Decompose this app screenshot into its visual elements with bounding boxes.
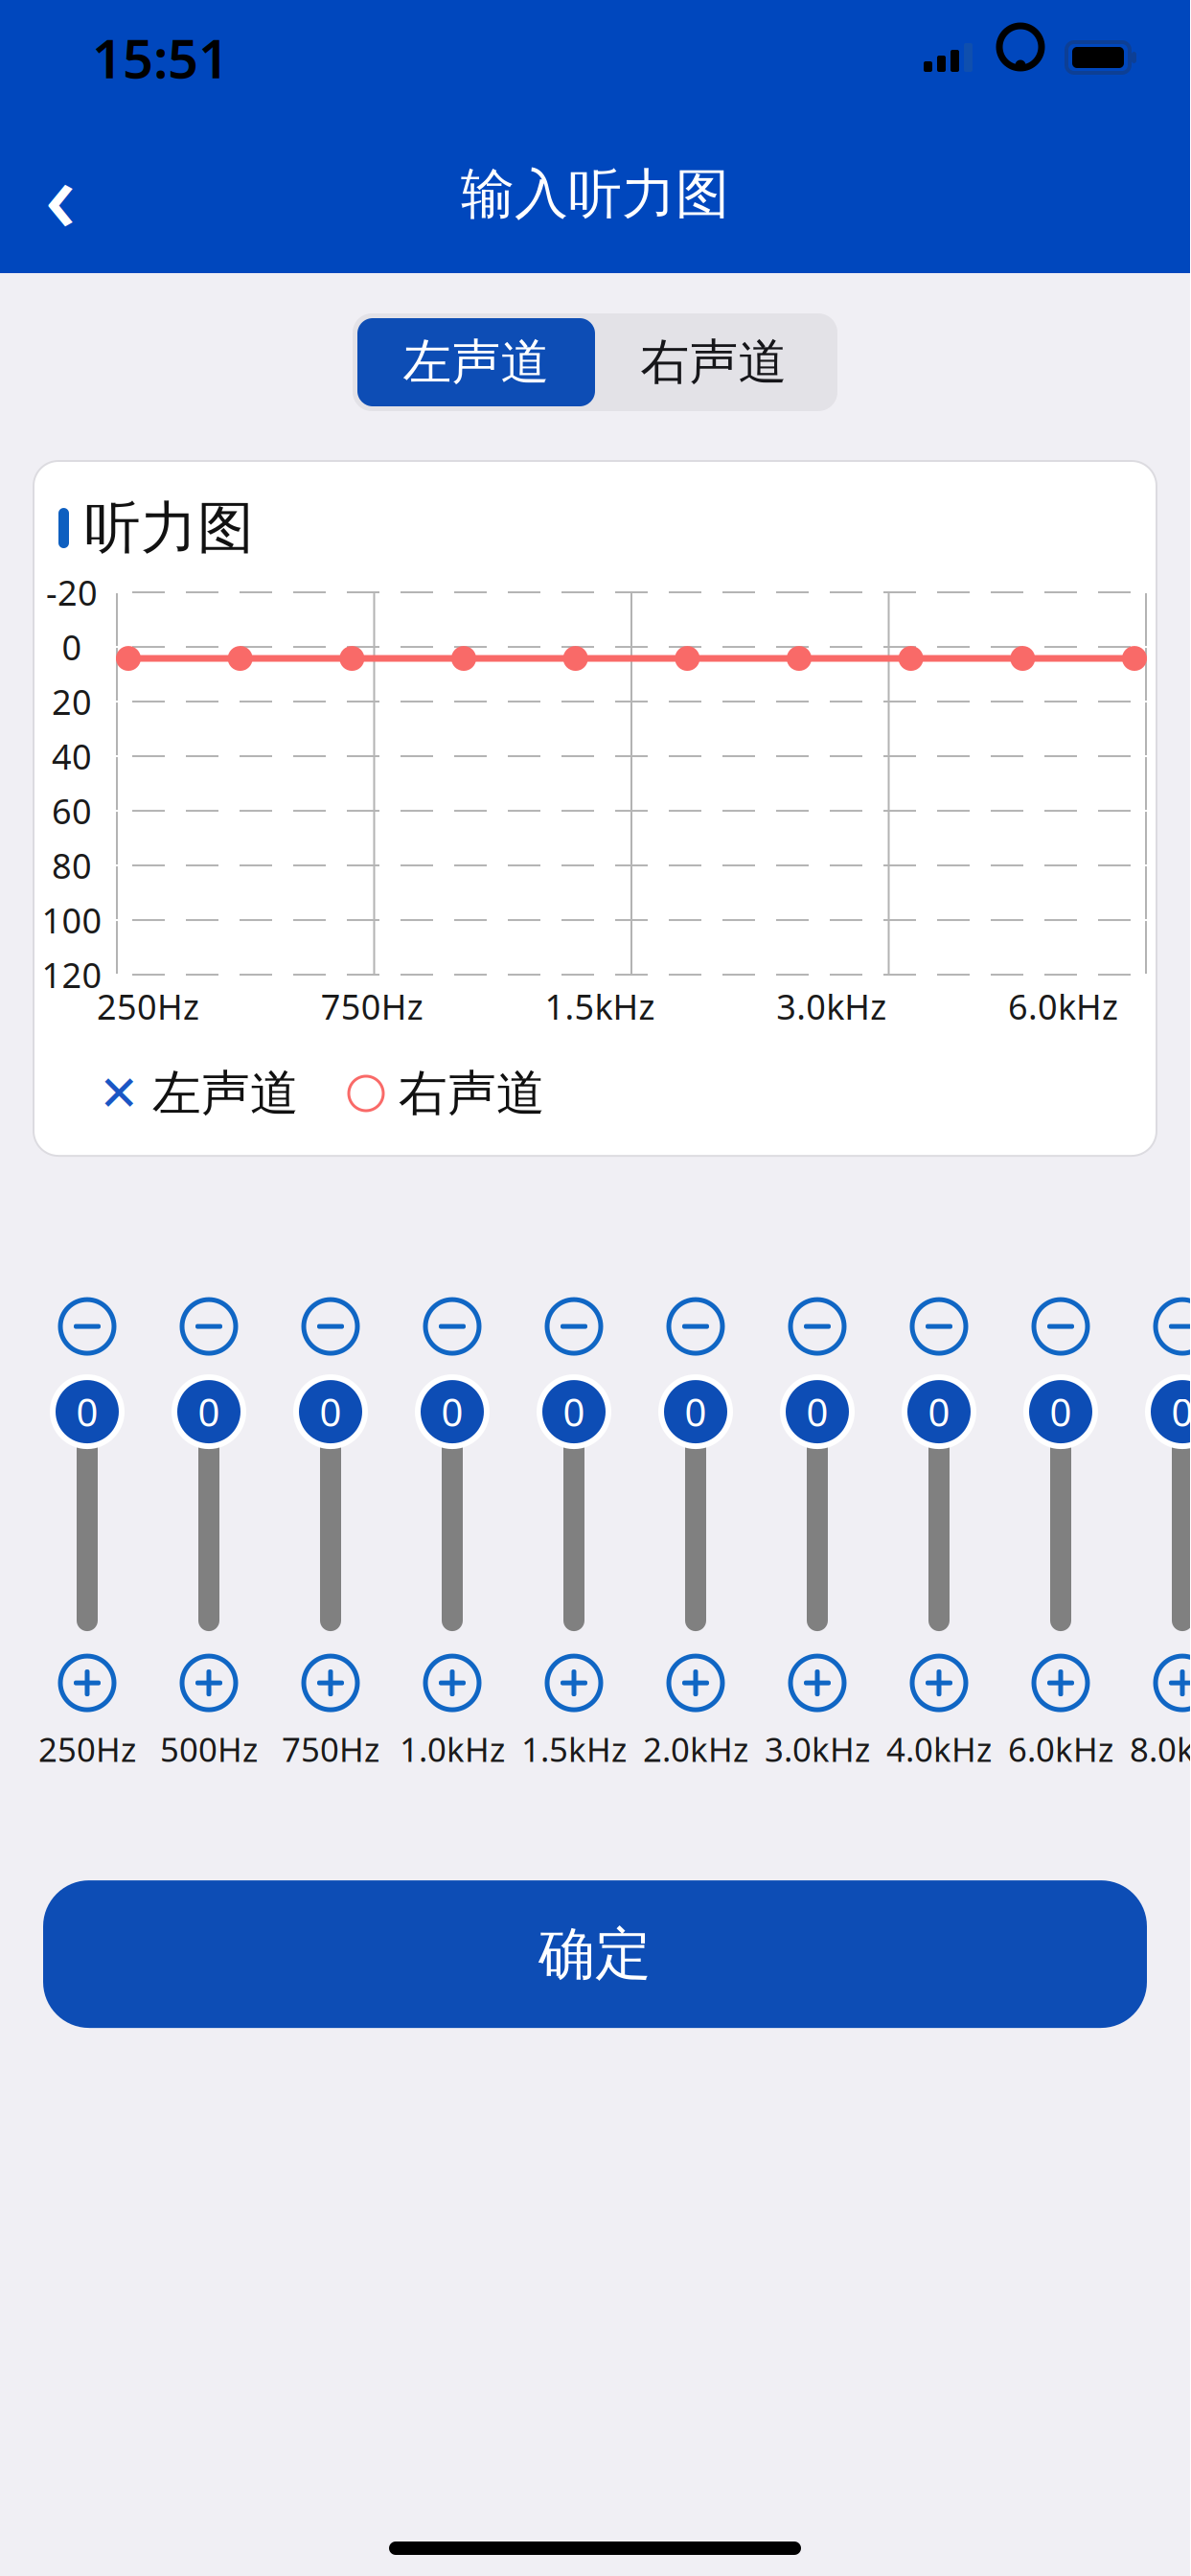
staticText: 0 <box>928 1386 950 1437</box>
button[interactable]: Decrease 250Hz <box>53 1292 122 1361</box>
button[interactable]: Decrease 4.0kHz <box>905 1292 973 1361</box>
staticText: 0 <box>1050 1386 1072 1437</box>
staticText: 500Hz <box>160 1727 258 1771</box>
button[interactable]: Increase 500Hz <box>174 1648 243 1717</box>
staticText: 3.0kHz <box>765 1727 870 1771</box>
staticText: 2.0kHz <box>643 1727 748 1771</box>
button[interactable]: Increase 1.0kHz <box>418 1648 487 1717</box>
button[interactable]: Increase 3.0kHz <box>783 1648 852 1717</box>
button[interactable]: Increase 4.0kHz <box>905 1648 973 1717</box>
staticText: 右声道 <box>641 332 787 392</box>
button[interactable]: 左声道 <box>357 318 595 406</box>
staticText: 0 <box>685 1386 707 1437</box>
staticText: 确定 <box>538 1920 652 1989</box>
staticText: 0 <box>806 1386 828 1437</box>
staticText: -20 <box>46 569 98 615</box>
staticText: 120 <box>42 952 102 998</box>
button[interactable]: Increase 250Hz <box>53 1648 122 1717</box>
staticText: 60 <box>52 788 92 834</box>
button[interactable]: Decrease 500Hz <box>174 1292 243 1361</box>
staticText: 听力图 <box>84 494 254 563</box>
staticText: 40 <box>52 733 92 779</box>
staticText: 1.5kHz <box>545 983 655 1029</box>
staticText: 20 <box>52 679 92 724</box>
button[interactable]: Increase 6.0kHz <box>1026 1648 1095 1717</box>
staticText: 6.0kHz <box>1008 1727 1113 1771</box>
staticText: ‹ <box>45 130 76 259</box>
staticText: 0 <box>198 1386 220 1437</box>
staticText: 0 <box>563 1386 585 1437</box>
button[interactable]: Decrease 3.0kHz <box>783 1292 852 1361</box>
staticText: 250Hz <box>97 983 199 1029</box>
staticText: 输入听力图 <box>461 161 729 227</box>
staticText: 1.5kHz <box>521 1727 627 1771</box>
staticText: 左声道 <box>403 332 550 392</box>
button[interactable]: Increase 1.5kHz <box>539 1648 608 1717</box>
staticText: 80 <box>52 843 92 888</box>
staticText: 0 <box>441 1386 463 1437</box>
staticText: 15:51 <box>92 22 229 93</box>
staticText: 1.0kHz <box>400 1727 505 1771</box>
button[interactable]: Decrease 8.0kHz <box>1148 1292 1191 1361</box>
button[interactable]: Increase 750Hz <box>296 1648 365 1717</box>
staticText: 左声道 <box>152 1064 299 1123</box>
button[interactable]: Increase 2.0kHz <box>661 1648 730 1717</box>
button[interactable]: Decrease 1.5kHz <box>539 1292 608 1361</box>
button[interactable]: 确定 <box>43 1880 1147 2028</box>
staticText: ✕ <box>99 1066 139 1121</box>
button[interactable]: 右声道 <box>595 318 833 406</box>
staticText: 250Hz <box>38 1727 136 1771</box>
staticText: 8.0kHz <box>1130 1727 1191 1771</box>
button[interactable]: Decrease 2.0kHz <box>661 1292 730 1361</box>
staticText: 0 <box>62 624 82 670</box>
staticText: 0 <box>76 1386 98 1437</box>
button[interactable]: Increase 8.0kHz <box>1148 1648 1191 1717</box>
staticText: 750Hz <box>282 1727 379 1771</box>
staticText: 6.0kHz <box>1008 983 1118 1029</box>
button[interactable]: Back <box>17 151 103 237</box>
staticText: 0 <box>320 1386 342 1437</box>
staticText: 4.0kHz <box>886 1727 992 1771</box>
staticText: 750Hz <box>321 983 423 1029</box>
staticText: 0 <box>1171 1386 1191 1437</box>
staticText: 右声道 <box>399 1064 545 1123</box>
button[interactable]: Decrease 1.0kHz <box>418 1292 487 1361</box>
staticText: 100 <box>42 897 102 943</box>
button[interactable]: Decrease 750Hz <box>296 1292 365 1361</box>
button[interactable]: Decrease 6.0kHz <box>1026 1292 1095 1361</box>
staticText: 3.0kHz <box>776 983 887 1029</box>
